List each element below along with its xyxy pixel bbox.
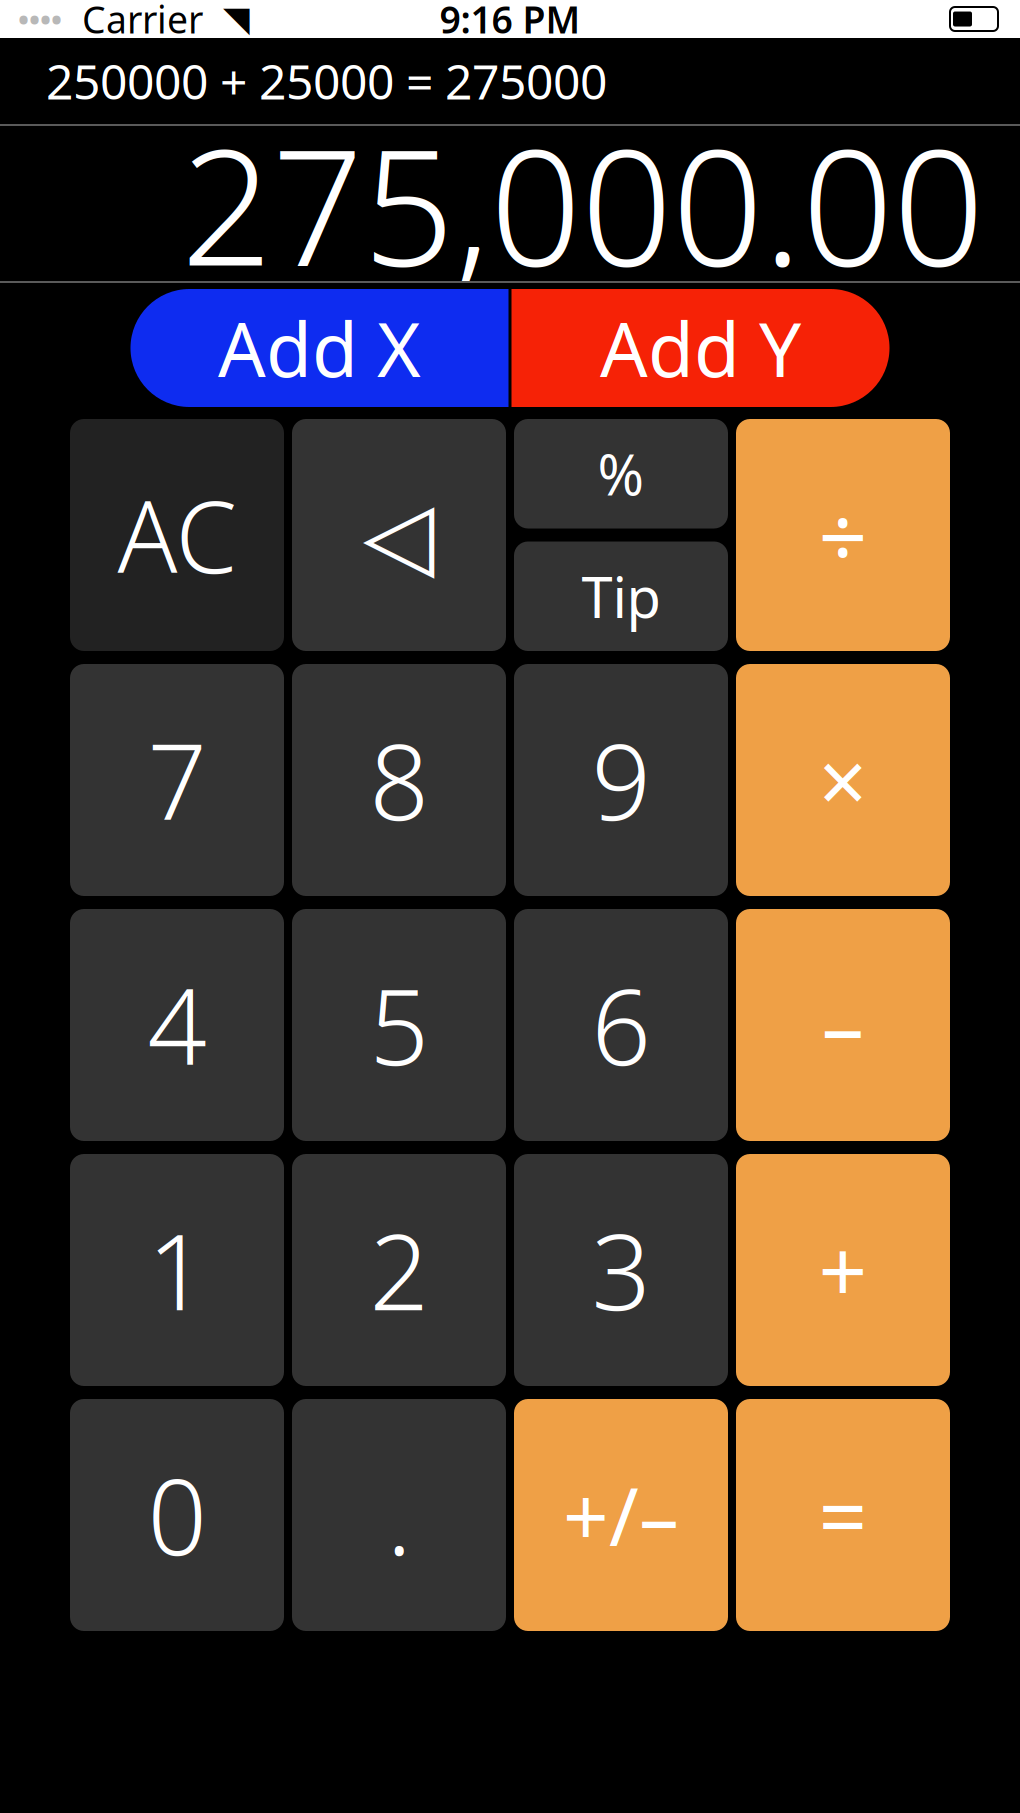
staticText: +/– [563,1462,679,1568]
staticText: Add Y [600,298,801,398]
button[interactable]: × [736,664,950,896]
button[interactable]: Add X [130,289,508,407]
staticText: + [818,1213,867,1327]
staticText: 6 [591,956,650,1094]
button[interactable]: 0 [70,1399,284,1631]
button[interactable]: 1 [70,1154,284,1386]
staticText: 8 [369,711,428,849]
button[interactable]: Tip [514,541,728,651]
button[interactable]: . [292,1399,506,1631]
staticText: 2 [369,1201,428,1339]
staticText: 250000 + 25000 = 275000 [46,49,607,113]
staticText: Carrier [62,0,223,44]
button[interactable]: +/– [514,1399,728,1631]
button[interactable]: 4 [70,909,284,1141]
staticText: ◁ [363,482,435,588]
staticText: 3 [591,1201,650,1339]
button[interactable]: 7 [70,664,284,896]
staticText: 0 [147,1446,206,1584]
button[interactable]: 5 [292,909,506,1141]
staticText: ◥ [223,0,250,39]
button[interactable]: 6 [514,909,728,1141]
staticText: Tip [581,559,660,633]
staticText: Add X [218,298,421,398]
staticText: •••• [18,0,62,38]
staticText: 275,000.00 [181,97,984,310]
button[interactable]: ÷ [736,419,950,651]
staticText: 4 [147,956,206,1094]
button[interactable]: 2 [292,1154,506,1386]
button[interactable]: ◁ [292,419,506,651]
button[interactable]: 3 [514,1154,728,1386]
staticText: 7 [147,711,206,849]
button[interactable]: Add Y [511,289,889,407]
staticText: – [821,968,864,1082]
staticText: 1 [147,1201,206,1339]
staticText: 5 [369,956,428,1094]
staticText: 9:16 PM [439,0,580,44]
button[interactable]: – [736,909,950,1141]
staticText: ÷ [818,478,867,592]
button[interactable]: = [736,1399,950,1631]
staticText: 9 [591,711,650,849]
button[interactable]: + [736,1154,950,1386]
button[interactable]: % [514,419,728,528]
staticText: % [597,437,644,511]
staticText: = [818,1458,867,1572]
staticText: . [386,1446,411,1584]
button[interactable]: 8 [292,664,506,896]
button[interactable]: AC [70,419,284,651]
staticText: × [818,723,867,837]
button[interactable]: 9 [514,664,728,896]
staticText: AC [117,469,236,600]
